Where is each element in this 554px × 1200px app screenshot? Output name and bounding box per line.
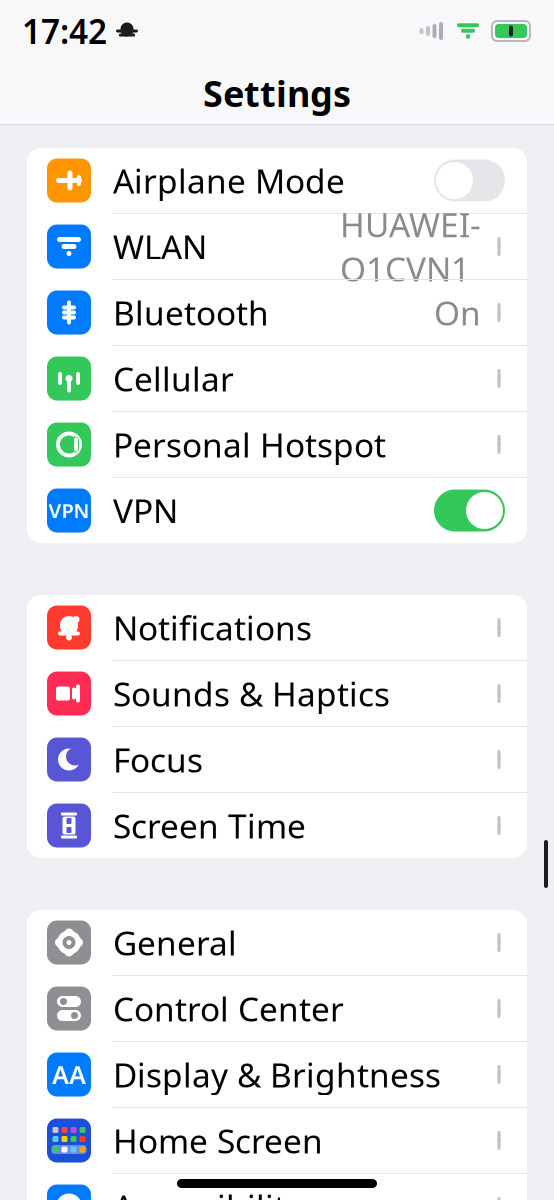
button[interactable]: VPN [27, 478, 527, 543]
staticText: Accessibility [113, 1184, 303, 1200]
staticText: Notifications [113, 605, 312, 650]
button[interactable]: Bluetooth [27, 280, 527, 346]
staticText: Screen Time [113, 803, 306, 848]
button[interactable]: Screen Time [27, 793, 527, 858]
button[interactable]: Cellular [27, 346, 527, 412]
button[interactable]: General [27, 910, 527, 976]
button[interactable]: Accessibility [27, 1174, 527, 1200]
staticText: Display & Brightness [113, 1052, 441, 1097]
staticText: VPN [113, 488, 178, 533]
staticText: Sounds & Haptics [113, 671, 390, 716]
staticText: Home Screen [113, 1118, 323, 1163]
staticText: On [434, 290, 481, 335]
staticText: WLAN [113, 224, 207, 269]
staticText: Airplane Mode [113, 158, 345, 203]
staticText: HUAWEI-O1CVN1 [340, 202, 481, 291]
button[interactable]: AA [27, 1042, 527, 1108]
staticText: 17:42 [22, 9, 107, 53]
staticText: Bluetooth [113, 290, 269, 335]
staticText: Control Center [113, 986, 344, 1031]
staticText: General [113, 920, 237, 965]
staticText: AA [52, 1058, 86, 1091]
staticText: VPN [48, 497, 89, 524]
staticText: Focus [113, 737, 203, 782]
staticText: Cellular [113, 356, 234, 401]
button[interactable]: Personal Hotspot [27, 412, 527, 478]
staticText: Settings [203, 69, 351, 117]
button[interactable]: Focus [27, 727, 527, 793]
button[interactable]: Notifications [27, 595, 527, 661]
button[interactable]: Airplane Mode [27, 148, 527, 214]
staticText: Personal Hotspot [113, 422, 386, 467]
button[interactable]: WLAN [27, 214, 527, 280]
button[interactable]: Control Center [27, 976, 527, 1042]
button[interactable]: Home Screen [27, 1108, 527, 1174]
button[interactable]: Sounds & Haptics [27, 661, 527, 727]
